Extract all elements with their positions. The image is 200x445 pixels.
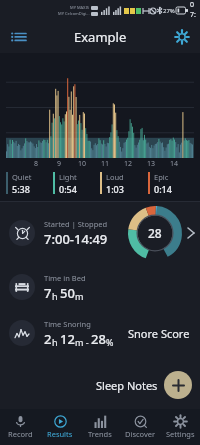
staticText: 07:57 bbox=[190, 0, 197, 21]
staticText: Time in Bed bbox=[44, 273, 86, 283]
button[interactable]: Settings bbox=[170, 25, 194, 49]
button[interactable]: Discover bbox=[120, 409, 160, 445]
staticText: MY CelcomDigi... bbox=[58, 11, 90, 16]
button[interactable]: Add sleep note bbox=[164, 371, 192, 399]
staticText: Loud bbox=[106, 172, 124, 182]
staticText: 27% bbox=[163, 7, 175, 15]
staticText: 7 bbox=[44, 284, 52, 302]
button[interactable]: Results bbox=[40, 409, 80, 445]
button[interactable]: Menu bbox=[6, 25, 30, 49]
staticText: MY MAXIS bbox=[70, 5, 90, 10]
staticText: 50 bbox=[60, 284, 75, 302]
staticText: Discover bbox=[125, 429, 156, 439]
staticText: 28 bbox=[148, 225, 162, 241]
staticText: 14 bbox=[170, 159, 179, 169]
staticText: m bbox=[75, 290, 84, 302]
staticText: 7:00-14:49 bbox=[44, 230, 108, 248]
staticText: Epic bbox=[154, 172, 169, 182]
staticText: 12 bbox=[124, 159, 133, 169]
staticText: 10 bbox=[78, 159, 87, 169]
staticText: 0:14 bbox=[154, 183, 172, 195]
staticText: 8 bbox=[34, 159, 39, 169]
button[interactable]: Quiet bbox=[6, 172, 53, 195]
staticText: 11 bbox=[101, 159, 110, 169]
button[interactable]: Record bbox=[0, 409, 40, 445]
staticText: Results bbox=[47, 429, 73, 439]
button[interactable]: Light bbox=[53, 172, 100, 195]
staticText: Settings bbox=[166, 429, 195, 439]
button[interactable]: Sleep Notes bbox=[0, 365, 200, 405]
button[interactable]: Loud bbox=[100, 172, 148, 195]
staticText: 2 bbox=[44, 330, 52, 348]
staticText: 13 bbox=[147, 159, 156, 169]
staticText: 9 bbox=[57, 159, 62, 169]
button[interactable]: Epic bbox=[148, 172, 196, 195]
staticText: Example bbox=[74, 28, 127, 46]
button[interactable]: Time Snoring bbox=[0, 310, 200, 356]
staticText: Record bbox=[8, 429, 33, 439]
staticText: 12 bbox=[60, 330, 75, 348]
button[interactable]: Started | Stopped bbox=[0, 202, 200, 264]
staticText: m - bbox=[75, 336, 91, 348]
staticText: Trends bbox=[88, 429, 112, 439]
staticText: Started | Stopped bbox=[44, 219, 108, 229]
staticText: h bbox=[52, 336, 60, 348]
staticText: Time Snoring bbox=[44, 319, 91, 329]
staticText: 5:38 bbox=[12, 183, 30, 195]
staticText: Quiet bbox=[12, 172, 32, 182]
staticText: h bbox=[52, 290, 60, 302]
staticText: 0:54 bbox=[59, 183, 77, 195]
staticText: % bbox=[106, 336, 114, 348]
staticText: Sleep Notes bbox=[96, 378, 158, 393]
button[interactable]: Settings bbox=[160, 409, 200, 445]
staticText: 1:03 bbox=[106, 183, 124, 195]
button[interactable]: Time in Bed bbox=[0, 264, 200, 310]
button[interactable]: Trends bbox=[80, 409, 120, 445]
staticText: Light bbox=[59, 172, 77, 182]
staticText: Snore Score bbox=[128, 326, 190, 341]
staticText: 28 bbox=[91, 330, 106, 348]
